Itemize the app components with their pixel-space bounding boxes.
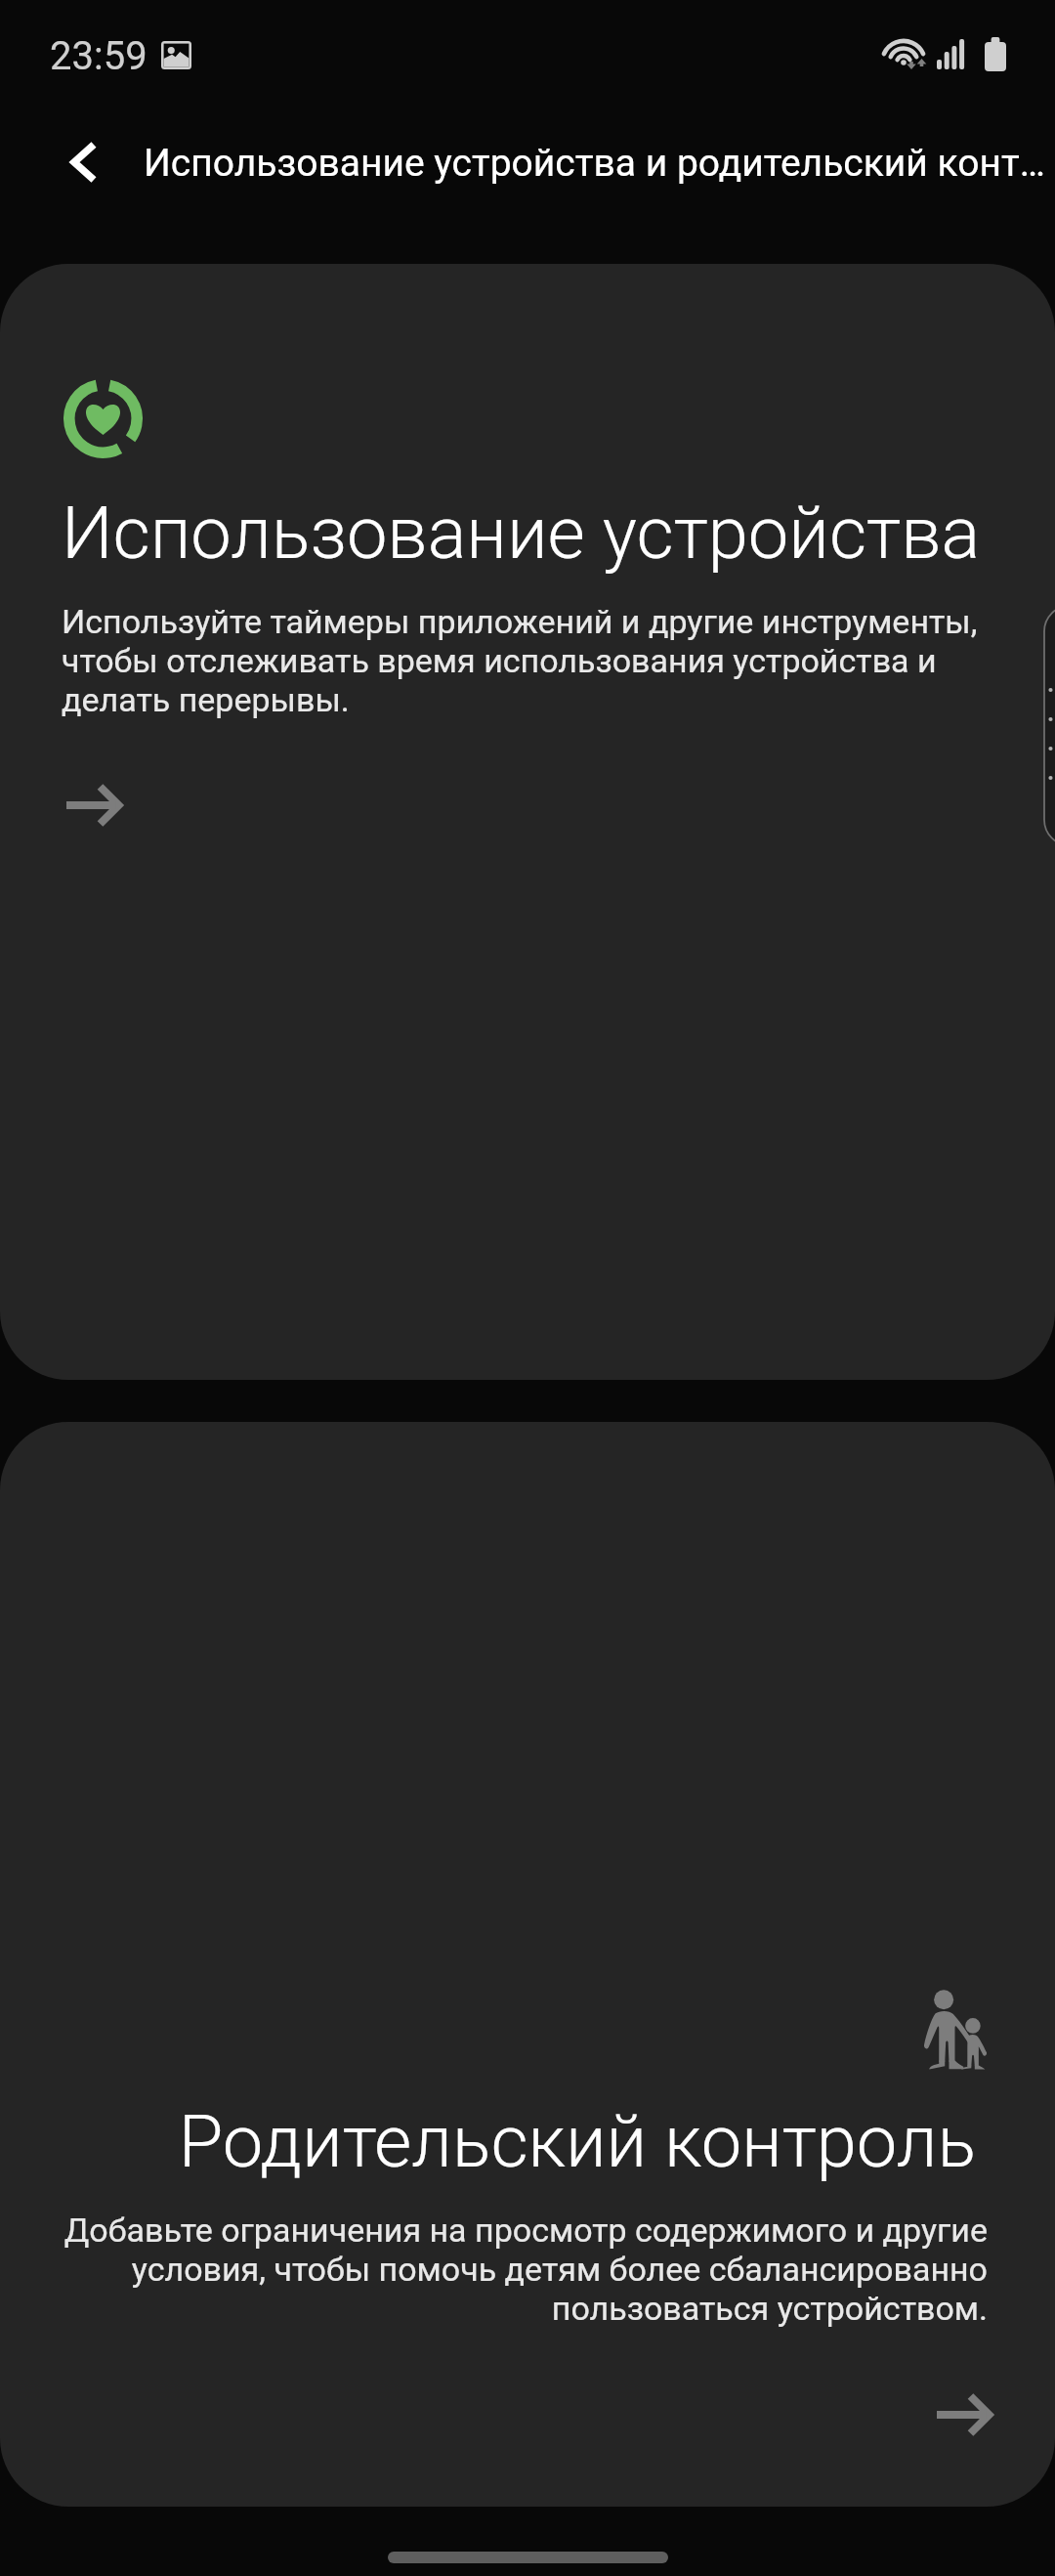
staticText: Использование устройства и родительский …: [144, 141, 1045, 186]
other: Open: [937, 2393, 992, 2436]
staticText: Родительский контроль: [63, 2099, 976, 2184]
staticText: Использование устройства: [62, 491, 981, 576]
button[interactable]: Back: [28, 110, 136, 214]
button[interactable]: Использование устройства: [0, 264, 1055, 1380]
staticText: Используйте таймеры приложений и другие …: [62, 602, 1001, 719]
staticText: 23:59: [50, 33, 148, 79]
button[interactable]: Родительский контроль: [0, 1422, 1055, 2507]
staticText: Добавьте ограничения на просмотр содержи…: [51, 2211, 988, 2328]
other: Open: [66, 784, 121, 827]
